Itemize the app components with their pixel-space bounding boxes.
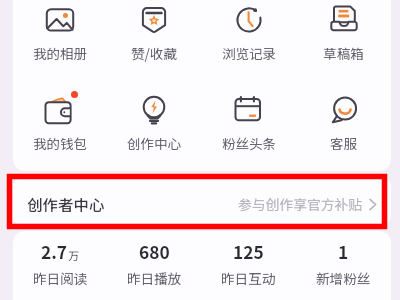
button[interactable]: 我的相册	[13, 5, 107, 63]
button[interactable]: 浏览记录	[201, 5, 296, 63]
staticText: 草稿箱	[323, 43, 364, 63]
staticText: 粉丝头条	[222, 133, 276, 153]
staticText: 客服	[330, 133, 357, 153]
staticText: 创作中心	[127, 133, 181, 153]
button[interactable]: 我的钱包	[13, 95, 107, 153]
staticText: 680	[139, 239, 170, 264]
button[interactable]: 草稿箱	[296, 5, 391, 63]
staticText: 我的钱包	[33, 133, 87, 153]
staticText: 赞/收藏	[131, 43, 177, 63]
staticText: 昨日互动	[221, 268, 276, 288]
staticText: 昨日阅读	[33, 268, 88, 288]
button[interactable]: 2.7	[13, 239, 107, 288]
staticText: 我的相册	[33, 43, 87, 63]
staticText: 新增粉丝	[316, 268, 371, 288]
staticText: 浏览记录	[222, 43, 276, 63]
staticText: 万	[68, 247, 79, 263]
button[interactable]: 1	[296, 239, 391, 288]
button[interactable]: 680	[107, 239, 201, 288]
staticText: 1	[338, 239, 349, 264]
button[interactable]: 赞/收藏	[107, 5, 201, 63]
staticText: 参与创作享官方补贴	[238, 194, 363, 214]
button[interactable]: 创作者中心	[13, 176, 391, 227]
button[interactable]: 创作中心	[107, 95, 201, 153]
staticText: 昨日播放	[127, 268, 182, 288]
button[interactable]: 粉丝头条	[201, 95, 296, 153]
button[interactable]: 客服	[296, 95, 391, 153]
staticText: 125	[233, 239, 264, 264]
button[interactable]: 125	[201, 239, 296, 288]
staticText: 创作者中心	[27, 193, 105, 215]
staticText: 2.7	[41, 239, 68, 264]
